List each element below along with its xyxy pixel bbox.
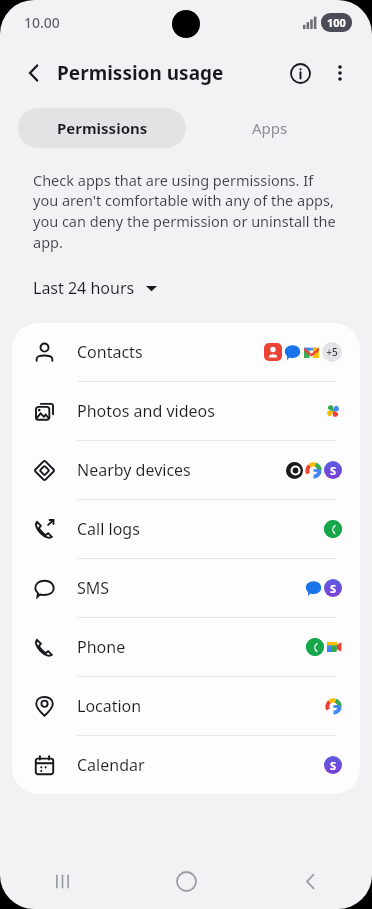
button[interactable]: Home xyxy=(124,853,248,909)
staticText: Contacts xyxy=(77,341,143,363)
staticText: S xyxy=(330,581,337,596)
button[interactable]: Last 24 hours xyxy=(26,273,164,303)
staticText: S xyxy=(330,758,337,773)
button[interactable]: Apps xyxy=(186,108,354,148)
staticText: Check apps that are using permissions. I… xyxy=(33,170,339,253)
staticText: Nearby devices xyxy=(77,459,191,481)
staticText: 100 xyxy=(327,15,346,30)
button[interactable]: Back xyxy=(248,853,372,909)
button[interactable]: SMS xyxy=(12,559,360,617)
button[interactable]: Recent apps xyxy=(0,853,124,909)
staticText: Photos and videos xyxy=(77,400,215,422)
button[interactable]: Back xyxy=(14,53,54,93)
staticText: 10.00 xyxy=(24,13,60,32)
button[interactable]: Contacts xyxy=(12,323,360,381)
staticText: Location xyxy=(77,695,142,717)
staticText: SMS xyxy=(77,577,110,599)
button[interactable]: Location xyxy=(12,677,360,735)
button[interactable]: Calendar xyxy=(12,736,360,794)
staticText: +5 xyxy=(326,345,338,359)
staticText: Calendar xyxy=(77,754,145,776)
button[interactable]: Nearby devices xyxy=(12,441,360,499)
staticText: Last 24 hours xyxy=(33,277,135,299)
button[interactable]: Information xyxy=(280,53,320,93)
button[interactable]: Call logs xyxy=(12,500,360,558)
staticText: S xyxy=(330,463,337,478)
button[interactable]: More options xyxy=(320,53,360,93)
staticText: Permission usage xyxy=(57,60,224,86)
staticText: Call logs xyxy=(77,518,140,540)
button[interactable]: Photos and videos xyxy=(12,382,360,440)
staticText: Apps xyxy=(252,118,288,138)
button[interactable]: Permissions xyxy=(18,108,186,148)
button[interactable]: Phone xyxy=(12,618,360,676)
staticText: Phone xyxy=(77,636,126,658)
staticText: Permissions xyxy=(57,118,148,138)
